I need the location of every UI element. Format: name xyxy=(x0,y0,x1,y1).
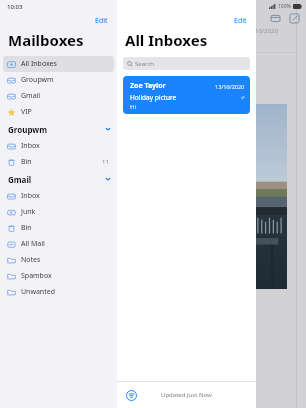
staticText: Inbox xyxy=(21,191,40,201)
staticText: All Mail xyxy=(21,239,45,249)
staticText: All Inboxes xyxy=(125,30,208,50)
button[interactable]: Edit xyxy=(228,14,253,28)
button[interactable]: Inbox xyxy=(3,138,114,154)
button[interactable]: Groupwm xyxy=(0,120,117,138)
staticText: Bin xyxy=(21,223,32,233)
staticText: 13/10/2020 xyxy=(215,83,245,90)
staticText: VIP xyxy=(21,107,32,117)
button[interactable]: Sidebar xyxy=(269,12,282,25)
button[interactable]: Zoe Taylor xyxy=(123,76,250,114)
button[interactable]: All Inboxes xyxy=(3,56,114,72)
staticText: 11 xyxy=(102,158,109,166)
staticText: Updated Just Now xyxy=(161,391,212,399)
staticText: Spambox xyxy=(21,271,52,281)
staticText: Groupwm xyxy=(8,124,47,135)
staticText: Bin xyxy=(21,157,32,167)
staticText: Junk xyxy=(21,207,36,217)
button[interactable]: Inbox xyxy=(3,188,114,204)
staticText: Mailboxes xyxy=(8,30,84,50)
button[interactable]: Bin xyxy=(3,220,114,236)
staticText: Groupwm xyxy=(21,75,54,85)
button[interactable]: Junk xyxy=(3,204,114,220)
button[interactable]: Gmail xyxy=(3,88,114,104)
staticText: Hi xyxy=(130,103,136,111)
button[interactable]: Groupwm xyxy=(3,72,114,88)
button[interactable]: Search xyxy=(123,57,250,70)
staticText: 10/2020 xyxy=(255,27,278,35)
staticText: 10:03 xyxy=(7,3,23,11)
button[interactable]: VIP xyxy=(3,104,114,120)
button[interactable]: Bin xyxy=(3,154,114,170)
staticText: Search xyxy=(135,60,154,68)
staticText: Gmail xyxy=(21,91,41,101)
staticText: All Inboxes xyxy=(21,59,57,69)
button[interactable]: Gmail xyxy=(0,170,117,188)
button[interactable]: All Mail xyxy=(3,236,114,252)
staticText: Gmail xyxy=(8,174,32,185)
button[interactable]: Notes xyxy=(3,252,114,268)
staticText: Edit xyxy=(234,16,247,26)
button[interactable]: Unwanted xyxy=(3,284,114,300)
button[interactable]: Filter xyxy=(123,387,139,403)
button[interactable]: Spambox xyxy=(3,268,114,284)
staticText: Unwanted xyxy=(21,287,55,297)
staticText: Notes xyxy=(21,255,41,265)
staticText: Holiday picture xyxy=(130,93,177,102)
button[interactable]: Compose xyxy=(288,12,301,25)
staticText: Edit xyxy=(95,16,108,26)
staticText: 100% xyxy=(278,3,291,10)
staticText: Inbox xyxy=(21,141,40,151)
staticText: Zoe Taylor xyxy=(130,81,166,91)
button[interactable]: Edit xyxy=(89,14,114,28)
